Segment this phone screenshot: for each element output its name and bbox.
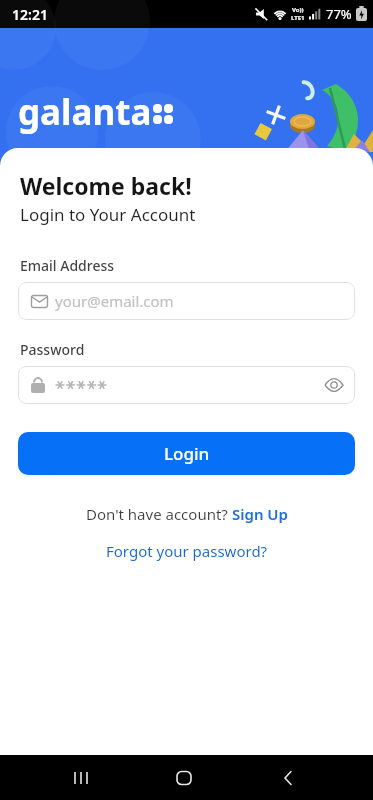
button[interactable]: Sign Up — [232, 504, 288, 524]
staticText: Forgot your password? — [106, 541, 268, 561]
button[interactable] — [275, 765, 301, 791]
staticText: Login — [164, 442, 210, 465]
staticText: Login to Your Account — [20, 203, 196, 226]
button[interactable] — [18, 366, 355, 404]
staticText: Vo)) — [292, 6, 304, 14]
staticText: Sign Up — [232, 504, 288, 524]
staticText: LTE1 — [291, 14, 305, 22]
button[interactable]: Forgot your password? — [106, 541, 268, 561]
staticText: galanta — [18, 88, 152, 136]
staticText: Welcome back! — [20, 170, 192, 201]
button[interactable]: your@email.com — [18, 282, 355, 320]
button[interactable] — [68, 765, 94, 791]
staticText: your@email.com — [55, 291, 174, 311]
button[interactable]: Login — [18, 432, 355, 475]
staticText: 77% — [326, 5, 352, 23]
staticText: Email Address — [20, 256, 115, 275]
staticText: Don't have account? — [86, 504, 232, 524]
staticText: Password — [20, 340, 85, 359]
button[interactable] — [171, 765, 197, 791]
staticText: 12:21 — [12, 5, 48, 24]
